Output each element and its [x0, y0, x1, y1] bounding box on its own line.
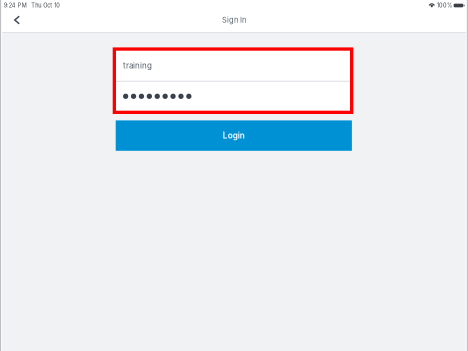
staticText: Thu Oct 10 [31, 2, 60, 9]
staticText: Login [223, 131, 245, 141]
staticText: 100% [437, 2, 452, 9]
staticText: Sign In [222, 15, 246, 24]
staticText: training [123, 61, 152, 71]
button[interactable]: Login [116, 120, 352, 151]
button[interactable]: Back [0, 10, 34, 29]
staticText: 9:24 PM [4, 2, 27, 9]
